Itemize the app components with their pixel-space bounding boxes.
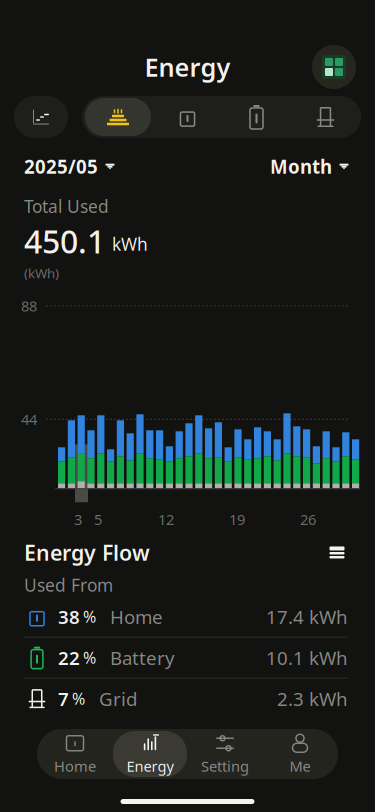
button[interactable]: Grid bbox=[291, 96, 360, 138]
button[interactable]: Solar bbox=[83, 96, 153, 138]
staticText: % bbox=[83, 606, 96, 627]
staticText: 19 bbox=[229, 510, 245, 529]
staticText: % bbox=[83, 647, 96, 668]
staticText: 450.1 bbox=[24, 220, 105, 262]
staticText: Month bbox=[270, 154, 332, 179]
staticText: Energy Flow bbox=[24, 538, 150, 567]
staticText: Energy bbox=[144, 50, 230, 84]
button[interactable]: Devices bbox=[312, 45, 356, 89]
staticText: 88 bbox=[21, 296, 37, 315]
staticText: Grid bbox=[99, 686, 137, 711]
staticText: (kWh) bbox=[24, 264, 59, 282]
staticText: 2025/05 bbox=[24, 154, 98, 179]
staticText: 22 bbox=[58, 645, 80, 670]
staticText: Home bbox=[110, 604, 163, 629]
button[interactable]: Layers bbox=[326, 542, 348, 562]
button[interactable]: Home bbox=[153, 96, 222, 138]
staticText: 10.1 kWh bbox=[266, 645, 348, 670]
staticText: 12 bbox=[158, 510, 174, 529]
staticText: Battery bbox=[110, 645, 175, 670]
staticText: 44 bbox=[21, 409, 37, 429]
staticText: 26 bbox=[300, 510, 316, 529]
button[interactable]: 38 bbox=[24, 597, 348, 637]
button[interactable]: Setting bbox=[187, 729, 262, 779]
button[interactable]: 7 bbox=[24, 679, 348, 719]
staticText: Setting bbox=[201, 756, 249, 776]
button[interactable]: Month bbox=[270, 154, 349, 179]
staticText: 5 bbox=[94, 510, 102, 529]
staticText: 2.3 kWh bbox=[277, 686, 348, 711]
staticText: Home bbox=[54, 756, 96, 776]
button[interactable]: Statistics bbox=[14, 96, 68, 138]
staticText: % bbox=[72, 688, 85, 709]
staticText: Energy bbox=[126, 756, 173, 776]
button[interactable]: Me bbox=[262, 729, 337, 779]
button[interactable]: Home bbox=[37, 729, 112, 779]
button[interactable]: 2025/05 bbox=[24, 154, 115, 179]
staticText: 7 bbox=[58, 686, 69, 711]
button[interactable]: Energy bbox=[112, 729, 187, 779]
staticText: 17.4 kWh bbox=[266, 604, 348, 629]
button[interactable]: 22 bbox=[24, 638, 348, 678]
staticText: kWh bbox=[112, 232, 148, 255]
staticText: 3 bbox=[74, 510, 82, 529]
staticText: Total Used bbox=[24, 195, 109, 218]
staticText: 38 bbox=[58, 604, 80, 629]
button[interactable]: Battery bbox=[222, 96, 291, 138]
staticText: Me bbox=[289, 756, 310, 776]
staticText: Used From bbox=[24, 574, 113, 597]
